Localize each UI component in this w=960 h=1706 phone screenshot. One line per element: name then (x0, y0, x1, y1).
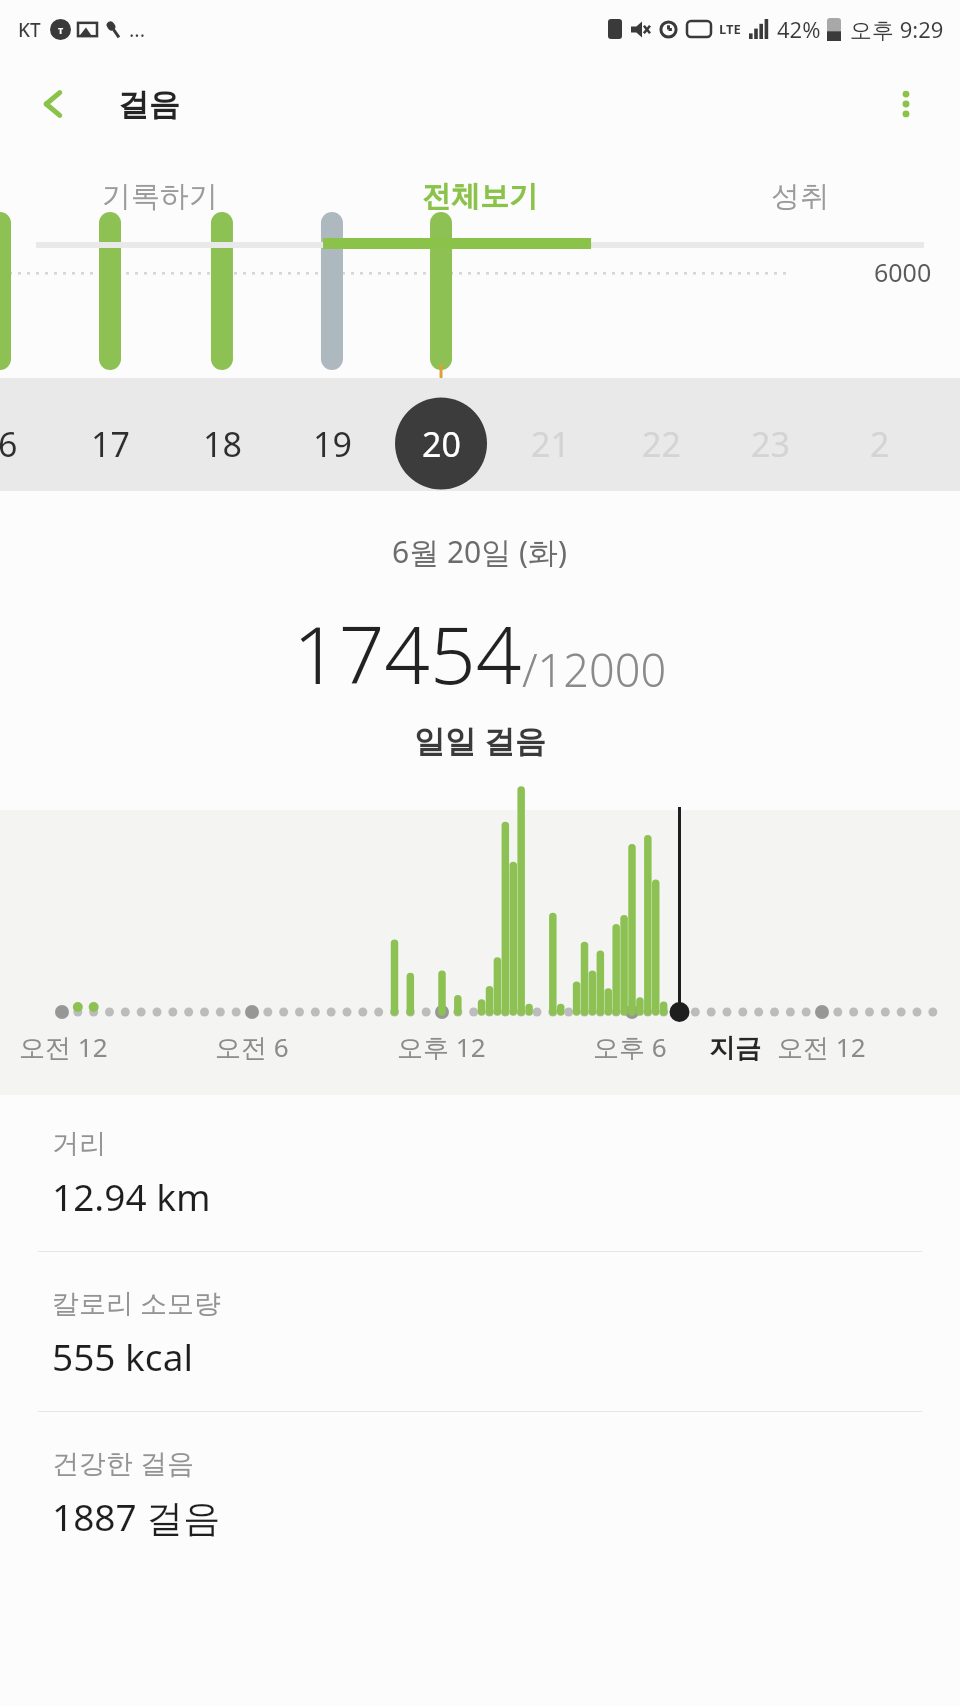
staticText: /12000 (522, 639, 667, 700)
staticText: 오후 12 (397, 1029, 486, 1065)
staticText: 오전 6 (215, 1029, 289, 1065)
button[interactable]: 성취 (640, 150, 960, 242)
button[interactable]: 20 (386, 378, 496, 491)
staticText: 2 (870, 421, 890, 467)
staticText: 555 kcal (52, 1331, 193, 1381)
staticText: 17454 (293, 598, 522, 707)
button[interactable]: 칼로리 소모량 (0, 1252, 960, 1412)
staticText: 일일 걸음 (414, 719, 547, 761)
button[interactable]: 19 (277, 378, 387, 491)
staticText: 18 (203, 421, 242, 467)
staticText: 오전 12 (19, 1029, 108, 1065)
button[interactable]: 거리 (0, 1095, 960, 1252)
staticText: 거리 (52, 1127, 106, 1161)
staticText: 오후 6 (593, 1029, 667, 1065)
staticText: 6000 (874, 255, 932, 289)
staticText: KT (18, 17, 41, 43)
staticText: 22 (642, 421, 681, 467)
button[interactable]: Back (26, 76, 82, 132)
staticText: LTE (719, 20, 741, 38)
staticText: 오후 9:29 (850, 14, 944, 44)
staticText: 오전 12 (777, 1029, 866, 1065)
button[interactable]: 18 (167, 378, 277, 491)
staticText: 6월 20일 (화) (392, 531, 568, 572)
staticText: 기록하기 (102, 178, 218, 215)
staticText: 6 (0, 421, 18, 467)
button[interactable]: 기록하기 (0, 150, 320, 242)
staticText: 전체보기 (422, 178, 538, 215)
button[interactable]: 22 (606, 378, 716, 491)
button[interactable]: 건강한 걸음 (0, 1412, 960, 1572)
staticText: 20 (422, 421, 461, 467)
button[interactable]: More options (876, 74, 936, 134)
staticText: 성취 (771, 178, 829, 215)
staticText: 23 (751, 421, 790, 467)
staticText: 건강한 걸음 (52, 1444, 195, 1481)
staticText: 42% (777, 14, 821, 44)
staticText: 21 (531, 421, 570, 467)
staticText: T (58, 24, 64, 36)
staticText: 12.94 km (52, 1171, 211, 1221)
staticText: 걸음 (118, 85, 180, 124)
staticText: 지금 (709, 1032, 761, 1065)
button[interactable]: 17 (55, 378, 165, 491)
button[interactable]: 23 (715, 378, 825, 491)
staticText: 1887 걸음 (52, 1491, 221, 1542)
staticText: 칼로리 소모량 (52, 1284, 222, 1321)
staticText: ... (129, 16, 146, 43)
staticText: 19 (313, 421, 352, 467)
button[interactable]: 전체보기 (320, 150, 640, 242)
button[interactable]: 6 (0, 378, 63, 491)
staticText: 17 (91, 421, 130, 467)
